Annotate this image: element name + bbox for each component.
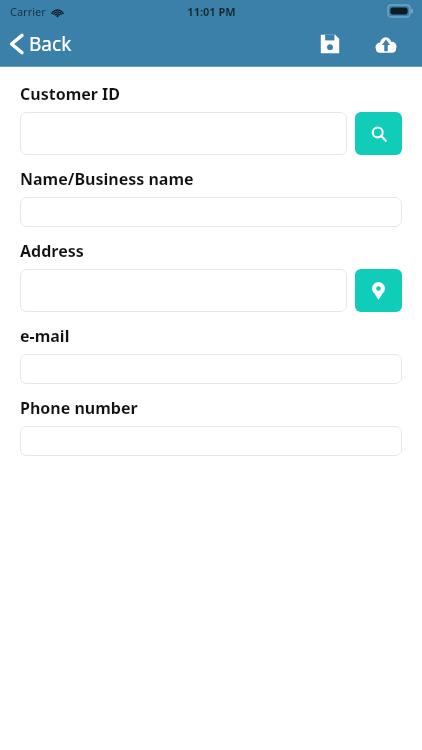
staticText: Address [20,240,84,262]
staticText: Name/Business name [20,168,194,190]
staticText: 11:01 PM [187,4,236,19]
button[interactable] [20,112,347,155]
staticText: e-mail [20,325,70,347]
button[interactable]: Search customer [355,112,402,155]
staticText: Back [29,31,72,57]
button[interactable] [20,269,347,312]
staticText: Customer ID [20,83,121,105]
button[interactable] [20,426,402,456]
button[interactable] [20,354,402,384]
button[interactable]: Upload [364,22,408,66]
staticText: Carrier [10,4,46,19]
staticText: Phone number [20,397,138,419]
button[interactable]: Save [308,22,352,66]
button[interactable]: Back [0,22,84,66]
button[interactable] [20,197,402,227]
button[interactable]: Pick location on map [355,269,402,312]
